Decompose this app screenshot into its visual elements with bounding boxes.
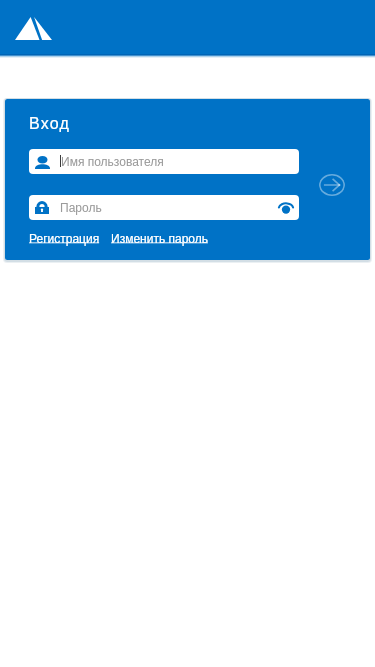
- button[interactable]: Пароль: [29, 195, 299, 220]
- button[interactable]: Регистрация: [29, 232, 100, 245]
- button[interactable]: Войти: [319, 173, 345, 197]
- staticText: Пароль: [60, 201, 102, 214]
- button[interactable]: Показать пароль: [273, 195, 298, 220]
- button[interactable]: Изменить пароль: [111, 232, 208, 245]
- staticText: Имя пользователя: [61, 155, 164, 168]
- button[interactable]: Имя пользователя: [29, 149, 299, 174]
- staticText: Вход: [29, 115, 70, 133]
